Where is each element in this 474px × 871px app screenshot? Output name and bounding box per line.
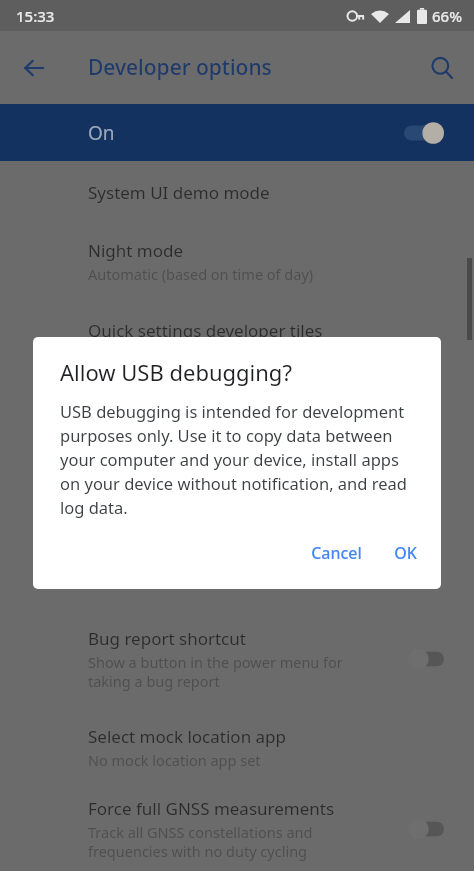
button[interactable]: Force full GNSS measurements bbox=[0, 787, 474, 871]
staticText: OK bbox=[394, 542, 417, 564]
staticText: Night mode bbox=[88, 239, 184, 262]
button[interactable]: System UI demo mode bbox=[0, 161, 474, 223]
button[interactable]: Select mock location app bbox=[0, 707, 474, 787]
button[interactable]: Night mode bbox=[0, 223, 474, 299]
staticText: USB debugging is intended for developmen… bbox=[60, 400, 419, 519]
button[interactable]: Force full GNSS measurements bbox=[408, 818, 444, 840]
button[interactable]: Bug report shortcut bbox=[408, 648, 444, 670]
staticText: Cancel bbox=[311, 542, 362, 564]
button[interactable]: On bbox=[0, 104, 474, 161]
button[interactable]: Cancel bbox=[299, 533, 374, 573]
staticText: Force full GNSS measurements bbox=[88, 797, 335, 820]
staticText: Quick settings developer tiles bbox=[88, 319, 323, 342]
button[interactable]: OK bbox=[382, 533, 429, 573]
button[interactable]: Search bbox=[418, 44, 466, 92]
staticText: Allow USB debugging? bbox=[60, 357, 292, 387]
staticText: Developer options bbox=[88, 53, 272, 82]
staticText: On bbox=[88, 120, 115, 146]
staticText: Track all GNSS constellations and freque… bbox=[88, 822, 313, 861]
staticText: Bug report shortcut bbox=[88, 627, 246, 650]
staticText: 15:33 bbox=[16, 6, 55, 26]
staticText: No mock location app set bbox=[88, 750, 261, 770]
button[interactable]: Back bbox=[10, 44, 58, 92]
button[interactable]: Bug report shortcut bbox=[0, 611, 474, 707]
staticText: System UI demo mode bbox=[88, 181, 270, 204]
staticText: Select mock location app bbox=[88, 725, 286, 748]
staticText: Automatic (based on time of day) bbox=[88, 264, 314, 284]
staticText: Show a button in the power menu for taki… bbox=[88, 652, 343, 691]
button[interactable]: Quick settings developer tiles bbox=[0, 299, 474, 361]
staticText: 66% bbox=[432, 6, 462, 26]
